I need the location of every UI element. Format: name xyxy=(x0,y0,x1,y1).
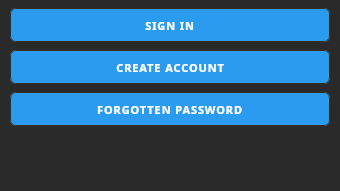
button[interactable]: CREATE ACCOUNT xyxy=(10,50,330,84)
button[interactable]: FORGOTTEN PASSWORD xyxy=(10,92,330,126)
staticText: CREATE ACCOUNT xyxy=(116,60,225,75)
button[interactable]: SIGN IN xyxy=(10,8,330,42)
staticText: FORGOTTEN PASSWORD xyxy=(97,102,243,117)
staticText: SIGN IN xyxy=(145,18,195,33)
